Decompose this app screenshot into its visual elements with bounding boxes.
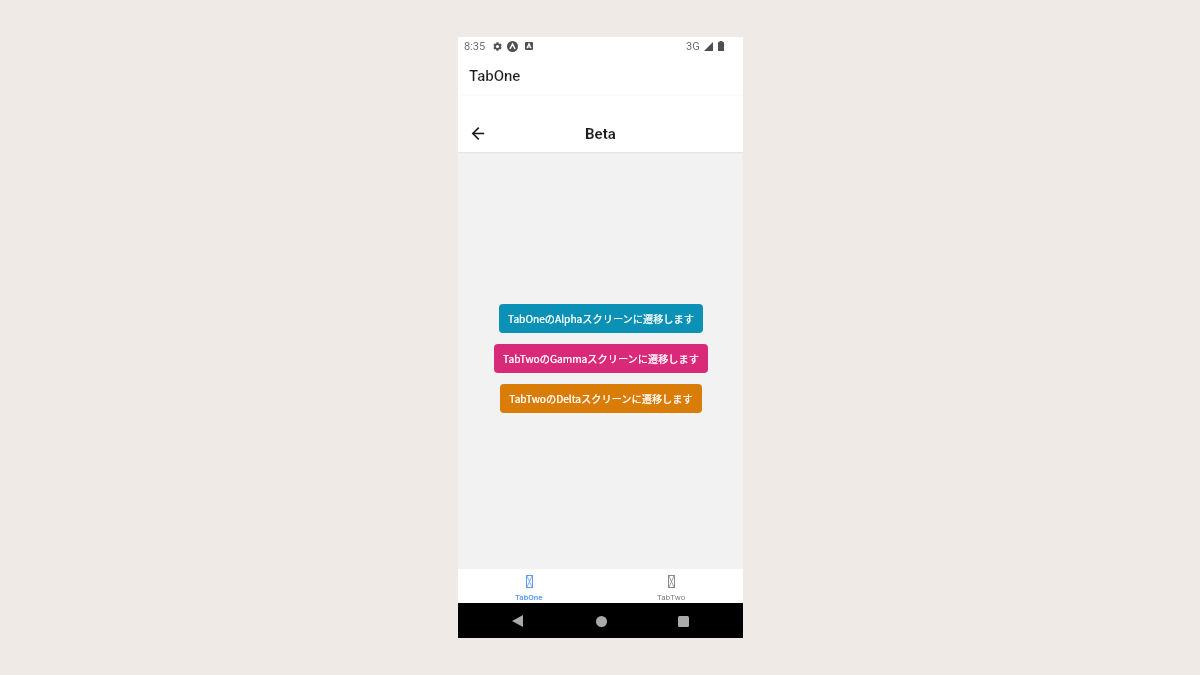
staticText: Beta [585, 125, 616, 143]
staticText: TabOne [515, 593, 543, 602]
staticText: TabTwo [657, 593, 686, 602]
button[interactable]: Recent apps [669, 607, 697, 635]
button[interactable]: TabOneのAlphaスクリーンに遷移します [499, 304, 703, 333]
staticText: 3G [686, 40, 700, 53]
staticText: TabTwoのGammaスクリーンに遷移します [503, 351, 699, 366]
button[interactable]: TabOne [458, 569, 600, 603]
staticText: TabOneのAlphaスクリーンに遷移します [508, 311, 694, 326]
button[interactable]: Home [587, 607, 615, 635]
staticText: TabOne [469, 67, 521, 85]
button[interactable]: Back [466, 121, 490, 145]
button[interactable]: TabTwoのGammaスクリーンに遷移します [494, 344, 708, 373]
staticText: TabTwoのDeltaスクリーンに遷移します [509, 391, 693, 406]
button[interactable]: TabTwo [600, 569, 743, 603]
staticText: 8:35 [464, 40, 486, 53]
button[interactable]: Back [503, 607, 531, 635]
button[interactable]: TabTwoのDeltaスクリーンに遷移します [500, 384, 702, 413]
